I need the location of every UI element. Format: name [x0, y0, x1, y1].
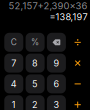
- button[interactable]: Delete: [47, 33, 66, 52]
- button[interactable]: %: [26, 33, 45, 52]
- staticText: 2: [32, 99, 38, 110]
- button[interactable]: 4: [4, 74, 23, 93]
- staticText: =138,197: [49, 11, 87, 23]
- staticText: 7: [11, 58, 16, 69]
- button[interactable]: Minus: [68, 74, 87, 93]
- button[interactable]: 5: [26, 74, 45, 93]
- staticText: 52,157+2,390×36: [8, 0, 87, 11]
- staticText: 4: [11, 78, 17, 89]
- button[interactable]: 9: [47, 54, 66, 73]
- button[interactable]: 8: [26, 54, 45, 73]
- button[interactable]: Divide: [68, 33, 87, 52]
- button[interactable]: 6: [47, 74, 66, 93]
- staticText: 6: [53, 78, 59, 89]
- button[interactable]: 3: [47, 95, 66, 110]
- button[interactable]: 1: [4, 95, 23, 110]
- staticText: %: [31, 37, 39, 47]
- staticText: 9: [53, 58, 59, 69]
- button[interactable]: 7: [4, 54, 23, 73]
- button[interactable]: C: [4, 33, 23, 52]
- button[interactable]: 2: [26, 95, 45, 110]
- button[interactable]: Plus: [68, 95, 87, 110]
- staticText: 5: [32, 78, 38, 89]
- staticText: 3: [53, 99, 59, 110]
- staticText: C: [11, 37, 17, 47]
- staticText: 8: [32, 58, 38, 69]
- staticText: 1: [12, 99, 16, 110]
- button[interactable]: Multiply: [68, 54, 87, 73]
